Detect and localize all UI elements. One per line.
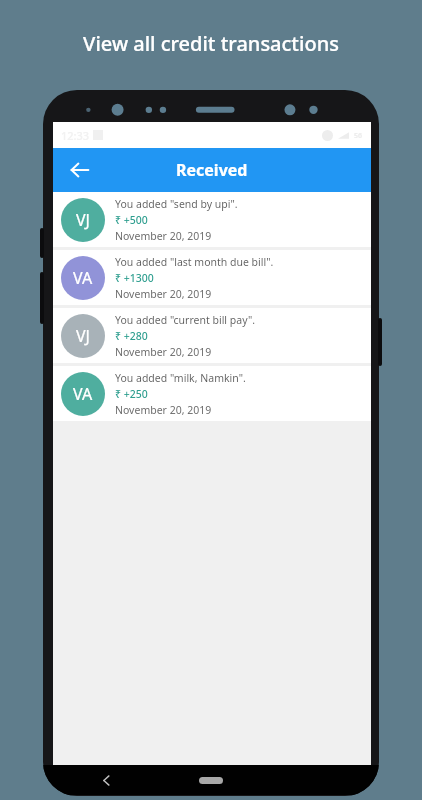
button[interactable]: Home [199,777,223,784]
button[interactable]: VJ [53,192,371,247]
staticText: November 20, 2019 [115,345,212,359]
staticText: November 20, 2019 [115,229,212,243]
staticText: Received [176,159,248,181]
staticText: 12:33 [61,128,90,143]
button[interactable]: VA [53,366,371,421]
staticText: ₹ +500 [115,213,148,227]
staticText: You added "last month due bill". [115,255,274,269]
staticText: You added "send by upi". [115,197,238,211]
staticText: November 20, 2019 [115,287,212,301]
staticText: ₹ +1300 [115,271,154,285]
button[interactable]: Back [61,151,99,189]
staticText: VA [73,383,93,405]
staticText: VJ [76,325,90,347]
staticText: 56 [354,131,363,141]
staticText: ₹ +280 [115,329,148,343]
staticText: You added "current bill pay". [115,313,256,327]
staticText: November 20, 2019 [115,403,212,417]
button[interactable]: VA [53,250,371,305]
staticText: VJ [76,209,90,231]
staticText: View all credit transactions [83,30,339,57]
staticText: VA [73,267,93,289]
staticText: ₹ +250 [115,387,148,401]
staticText: You added "milk, Namkin". [115,371,246,385]
button[interactable]: Back [93,767,119,793]
button[interactable]: VJ [53,308,371,363]
